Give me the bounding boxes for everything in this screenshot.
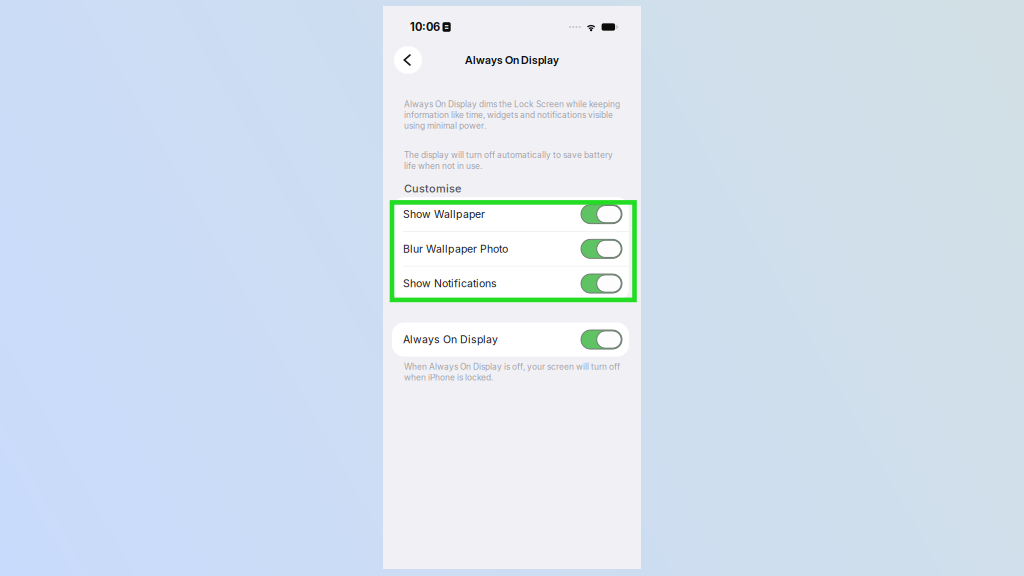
button[interactable]: Back <box>394 46 422 74</box>
staticText: Show Notifications <box>403 277 497 290</box>
button[interactable]: Show Notifications <box>392 266 629 300</box>
staticText: The display will turn off automatically … <box>404 150 613 171</box>
button[interactable]: Show Wallpaper <box>392 197 629 231</box>
staticText: Always On Display <box>403 333 498 346</box>
staticText: When Always On Display is off, your scre… <box>404 361 620 382</box>
staticText: Show Wallpaper <box>403 208 485 220</box>
button[interactable]: Always On Display <box>392 322 629 356</box>
staticText: Customise <box>404 182 461 195</box>
button[interactable]: Blur Wallpaper Photo <box>392 232 629 266</box>
staticText: Blur Wallpaper Photo <box>403 242 508 255</box>
staticText: Always On Display <box>465 53 559 67</box>
staticText: Always On Display dims the Lock Screen w… <box>404 99 620 131</box>
staticText: 10:06 <box>410 20 440 34</box>
